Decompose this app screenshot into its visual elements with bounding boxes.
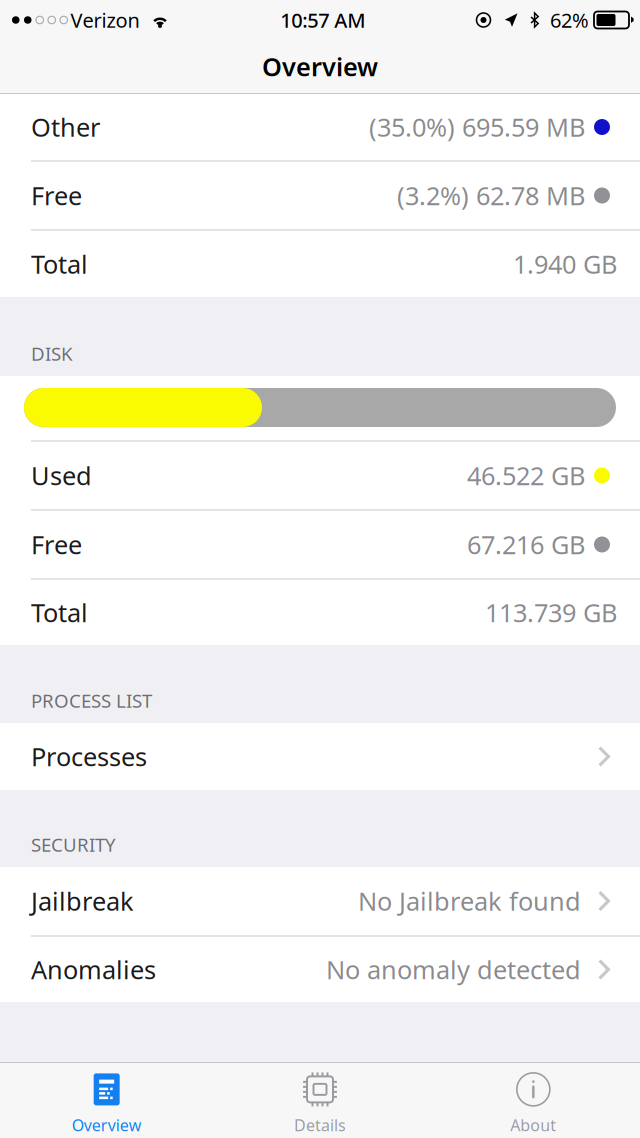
button[interactable]: About	[427, 1062, 640, 1138]
staticText: Anomalies	[31, 953, 156, 986]
staticText: Total	[31, 596, 88, 629]
button[interactable]: Anomalies	[0, 937, 640, 1002]
staticText: DISK	[31, 341, 73, 366]
button[interactable]: Total	[0, 231, 640, 297]
button[interactable]: Jailbreak	[0, 867, 640, 935]
staticText: Free	[31, 528, 82, 561]
staticText: Used	[31, 459, 92, 492]
staticText: SECURITY	[31, 832, 116, 857]
staticText: No anomaly detected	[326, 953, 581, 986]
staticText: 62%	[550, 7, 589, 33]
button[interactable]: Total	[0, 580, 640, 645]
staticText: (35.0%) 695.59 MB	[369, 110, 585, 144]
staticText: Other	[31, 110, 100, 144]
staticText: 10:57 AM	[280, 7, 365, 33]
staticText: Details	[294, 1114, 346, 1136]
button[interactable]: Used	[0, 442, 640, 509]
staticText: Processes	[31, 740, 147, 773]
button[interactable]: Details	[213, 1062, 427, 1138]
button[interactable]: Free	[0, 162, 640, 229]
staticText: (3.2%) 62.78 MB	[397, 179, 585, 212]
staticText: 46.522 GB	[467, 459, 585, 492]
button[interactable]: Processes	[0, 723, 640, 790]
staticText: Overview	[262, 50, 378, 83]
staticText: 1.940 GB	[513, 247, 617, 281]
staticText: Verizon	[70, 7, 139, 33]
staticText: About	[510, 1114, 556, 1136]
button[interactable]: Overview	[0, 1062, 213, 1138]
staticText: Jailbreak	[31, 884, 134, 918]
staticText: PROCESS LIST	[31, 688, 152, 713]
staticText: Overview	[72, 1114, 142, 1136]
staticText: 113.739 GB	[485, 596, 617, 629]
button[interactable]: Other	[0, 94, 640, 160]
staticText: No Jailbreak found	[358, 884, 581, 918]
staticText: 67.216 GB	[467, 528, 585, 561]
button[interactable]: Free	[0, 511, 640, 578]
staticText: Free	[31, 179, 82, 212]
staticText: Total	[31, 247, 88, 281]
